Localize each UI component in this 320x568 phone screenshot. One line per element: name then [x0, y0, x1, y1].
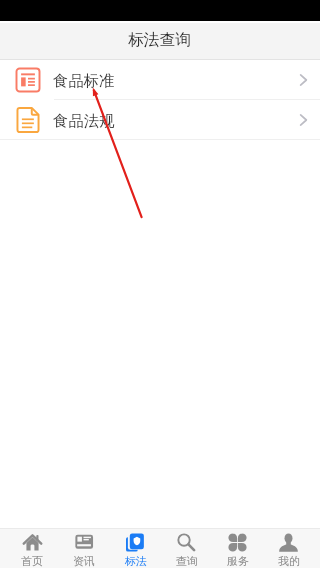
- button[interactable]: 资讯: [58, 529, 110, 568]
- button[interactable]: 查询: [161, 529, 212, 568]
- staticText: 标法: [125, 554, 147, 568]
- button[interactable]: 食品法规: [0, 100, 320, 140]
- staticText: 标法查询: [128, 30, 192, 50]
- staticText: 首页: [21, 554, 43, 568]
- button[interactable]: 食品标准: [0, 60, 320, 100]
- staticText: 我的: [278, 554, 300, 568]
- staticText: 服务: [227, 554, 249, 568]
- button[interactable]: 首页: [6, 529, 58, 568]
- staticText: 食品标准: [53, 71, 115, 90]
- button[interactable]: 我的: [263, 529, 314, 568]
- button[interactable]: 标法: [110, 529, 161, 568]
- button[interactable]: 服务: [212, 529, 263, 568]
- staticText: 资讯: [73, 554, 95, 568]
- staticText: 查询: [176, 554, 198, 568]
- staticText: 食品法规: [53, 111, 115, 130]
